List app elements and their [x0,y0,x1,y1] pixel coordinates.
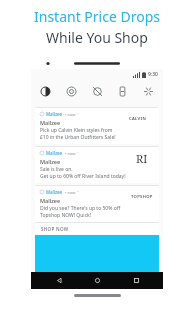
staticText: • now ˅ [65,190,79,195]
button[interactable]: Mallzee [35,146,159,183]
button[interactable]: Recent apps [125,272,147,289]
staticText: Get up to 60% off River Island today! [40,173,126,180]
button[interactable]: Mallzee [35,185,159,234]
staticText: TOPSHOP [131,194,153,200]
staticText: £10 in the Urban Outfitters Sale! [40,134,116,141]
staticText: Did you see? There's up to 50% off [40,205,121,212]
button[interactable]: Back [48,272,70,289]
staticText: Instant Price Drops [34,7,160,26]
staticText: Mallzee [46,150,63,156]
staticText: Pick up Calvin Klein styles from [40,127,113,134]
staticText: Mallzee [40,197,61,204]
staticText: Topshop NOW! Quick! [40,212,92,219]
staticText: Mallzee [40,158,61,165]
staticText: Mallzee [46,111,63,117]
staticText: While You Shop [46,28,148,47]
button[interactable]: Quick setting 3 [91,85,104,98]
staticText: Mallzee [40,119,61,126]
staticText: • now ˅ [65,112,79,117]
button[interactable]: Quick setting 2 [65,85,78,98]
button[interactable]: Home [86,272,108,289]
staticText: RI [136,151,148,166]
button[interactable]: Quick setting 1 [39,85,52,98]
button[interactable]: Quick setting 5 [142,85,155,98]
staticText: Mallzee [46,189,63,195]
staticText: SHOP NOW [41,226,69,232]
staticText: Sale is live on. [40,166,73,173]
staticText: 9:30 [148,71,158,78]
staticText: • now ˅ [65,151,79,156]
staticText: CALVIN KLEIN [129,116,155,122]
button[interactable]: Mallzee [35,107,159,144]
button[interactable]: SHOP NOW [35,223,159,234]
button[interactable]: Quick setting 4 [116,85,129,98]
